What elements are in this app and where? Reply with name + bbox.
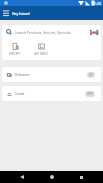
button[interactable]: Count [2,86,101,101]
button[interactable]: Recent apps [74,171,88,183]
button[interactable]: Home [45,171,59,183]
button[interactable]: Deliveries [2,67,101,82]
button[interactable]: EXPORT [2,39,28,60]
button[interactable]: GET INFO [28,39,54,60]
staticText: Count [15,92,25,96]
staticText: EXPORT [9,52,21,56]
staticText: Hey Istvan! [12,11,31,16]
staticText: 17:25 [91,1,102,6]
button[interactable]: Back [15,171,29,183]
button[interactable]: Search Products, Articles, Barcode [6,25,99,39]
staticText: 23 [89,73,93,77]
button[interactable]: Scan barcode [88,27,99,38]
staticText: 479 [87,92,93,96]
staticText: GET INFO [34,52,48,56]
staticText: Search Products, Articles, Barcode [15,30,71,35]
staticText: Deliveries [15,73,30,77]
button[interactable]: Open navigation menu [1,8,11,18]
